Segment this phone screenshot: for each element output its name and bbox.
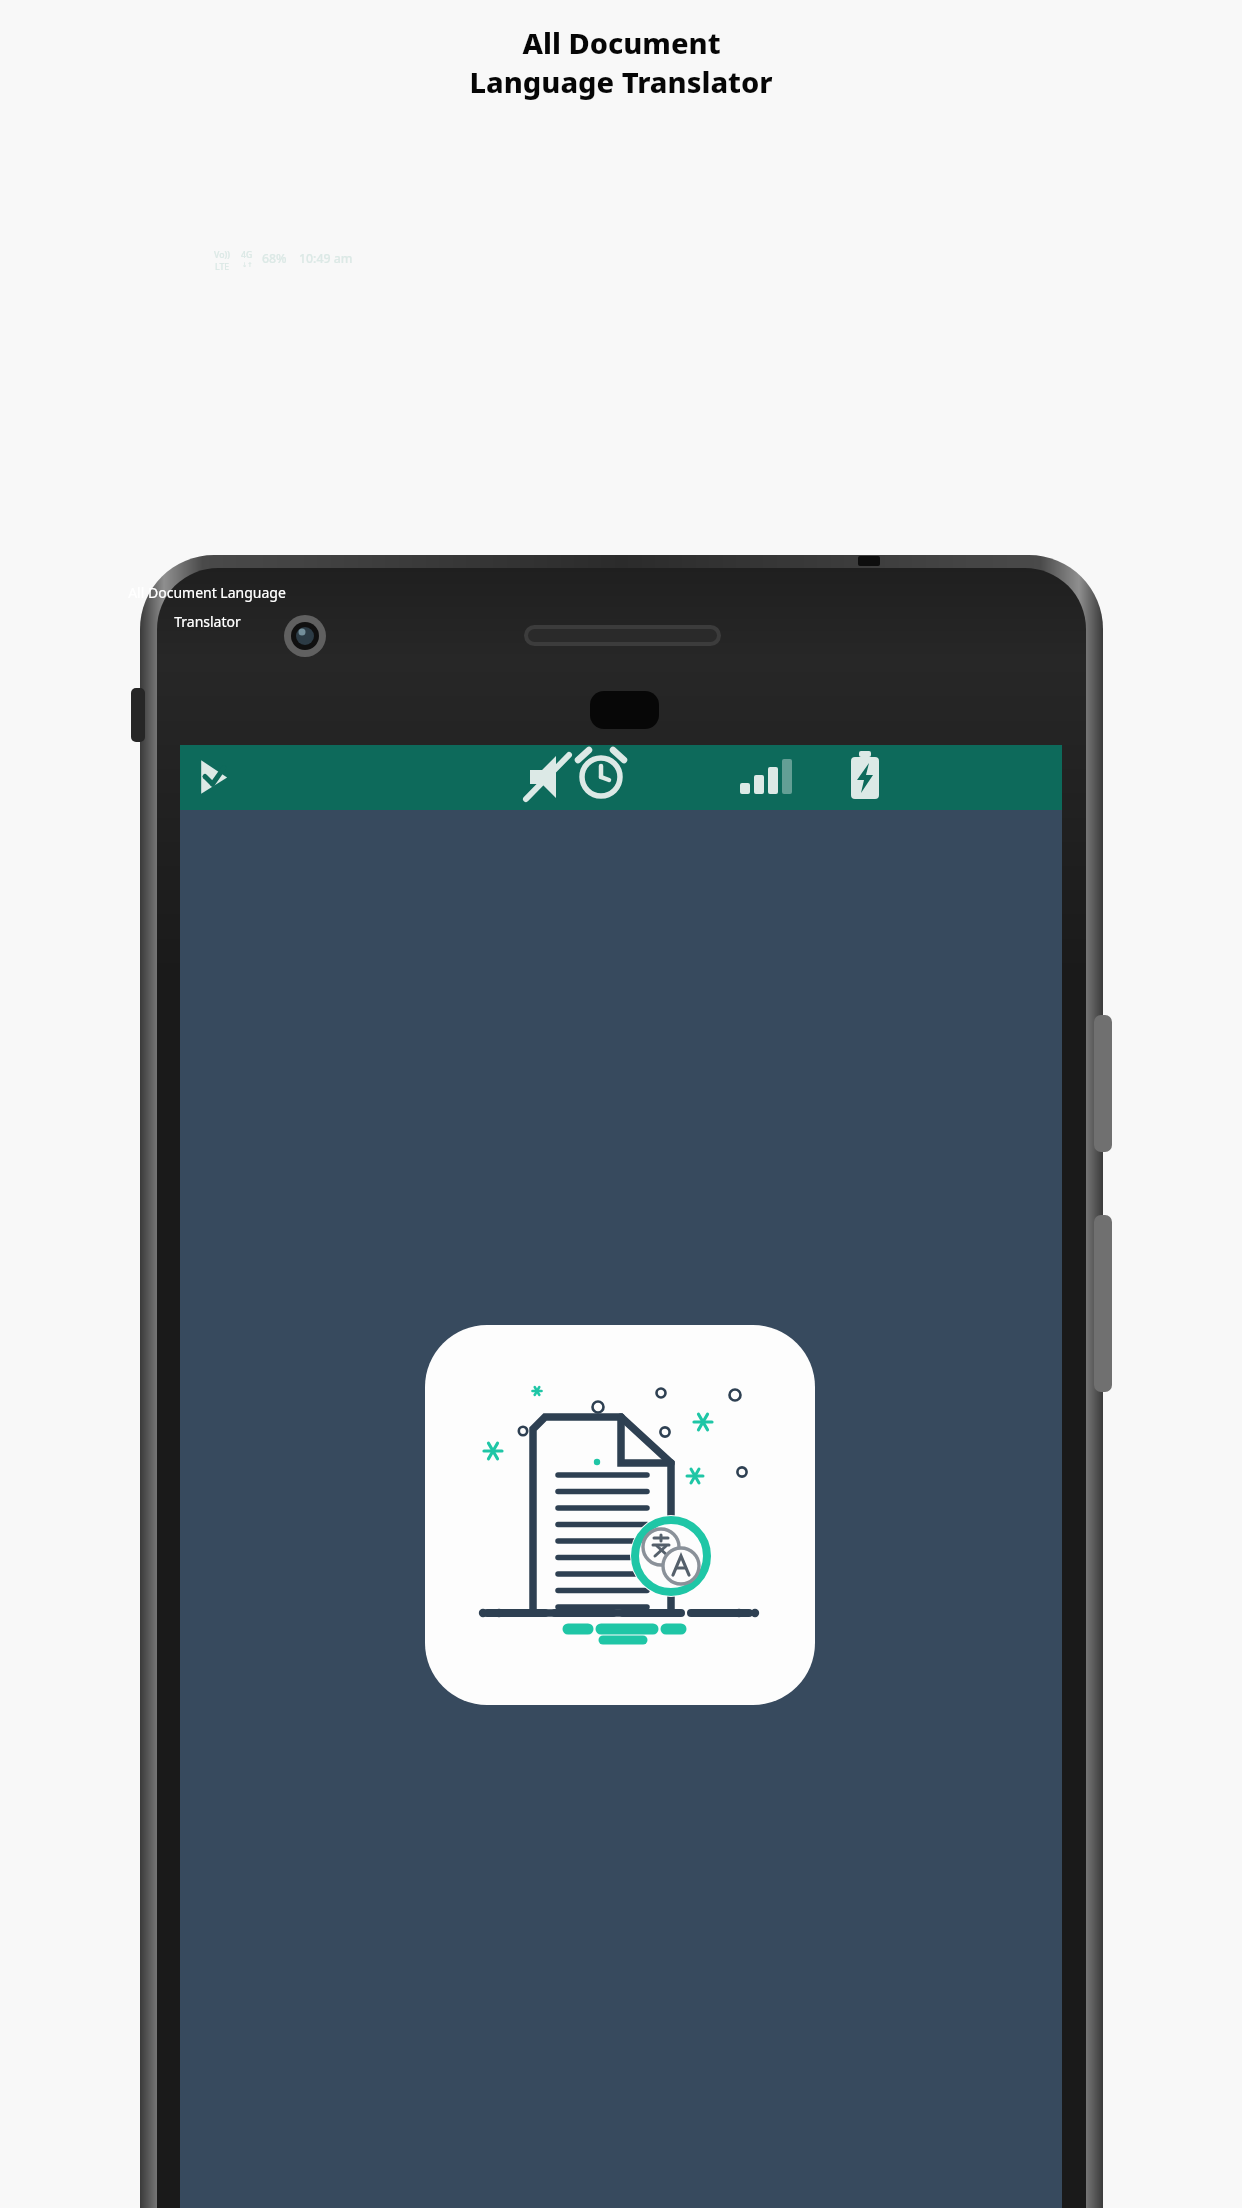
button[interactable]: All Document Language [60, 583, 354, 631]
staticText: Language Translator [469, 62, 773, 101]
staticText: Vo)) [214, 249, 230, 261]
staticText: ↓↑ [242, 261, 253, 268]
staticText: Translator [174, 612, 241, 631]
staticText: All Document Language [128, 583, 286, 602]
staticText: 4G [241, 249, 253, 261]
staticText: LTE [215, 261, 230, 273]
staticText: 10:49 am [299, 250, 353, 267]
staticText: 68% [262, 250, 287, 267]
button[interactable]: All Document Language Translator app ico… [142, 442, 272, 569]
staticText: All Document [522, 23, 721, 62]
